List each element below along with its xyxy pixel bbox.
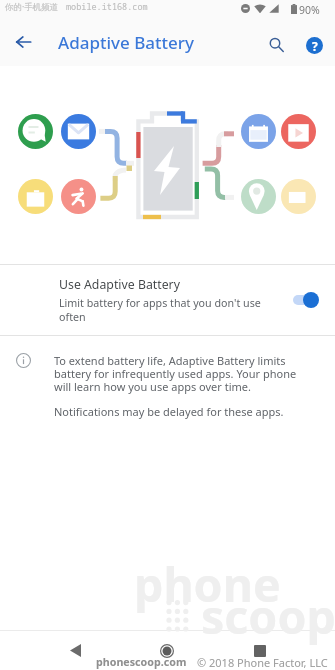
button[interactable]: Navigate up bbox=[0, 18, 46, 66]
staticText: phone bbox=[134, 552, 281, 615]
button[interactable]: Back bbox=[51, 631, 99, 670]
button[interactable]: Recent apps bbox=[236, 631, 284, 670]
staticText: Use Adaptive Battery bbox=[59, 276, 180, 293]
staticText: Adaptive Battery bbox=[58, 31, 194, 54]
staticText: 你的·手机频道 bbox=[5, 1, 59, 13]
staticText: © 2018 Phone Factor, LLC bbox=[197, 655, 328, 670]
staticText: 90% bbox=[299, 3, 320, 17]
staticText: To extend battery life, Adaptive Battery… bbox=[54, 353, 313, 395]
staticText: Limit battery for apps that you don't us… bbox=[59, 296, 281, 324]
staticText: ? bbox=[312, 38, 318, 54]
staticText: scoop bbox=[201, 584, 335, 647]
button[interactable]: Home bbox=[143, 631, 191, 670]
staticText: phonescoop.com bbox=[96, 655, 187, 670]
button[interactable]: Search bbox=[262, 25, 291, 65]
button[interactable]: Help bbox=[298, 25, 330, 65]
button[interactable]: Use Adaptive Battery bbox=[0, 265, 335, 335]
staticText: Notifications may be delayed for these a… bbox=[54, 404, 284, 419]
staticText: mobile.it168.com bbox=[66, 1, 148, 13]
